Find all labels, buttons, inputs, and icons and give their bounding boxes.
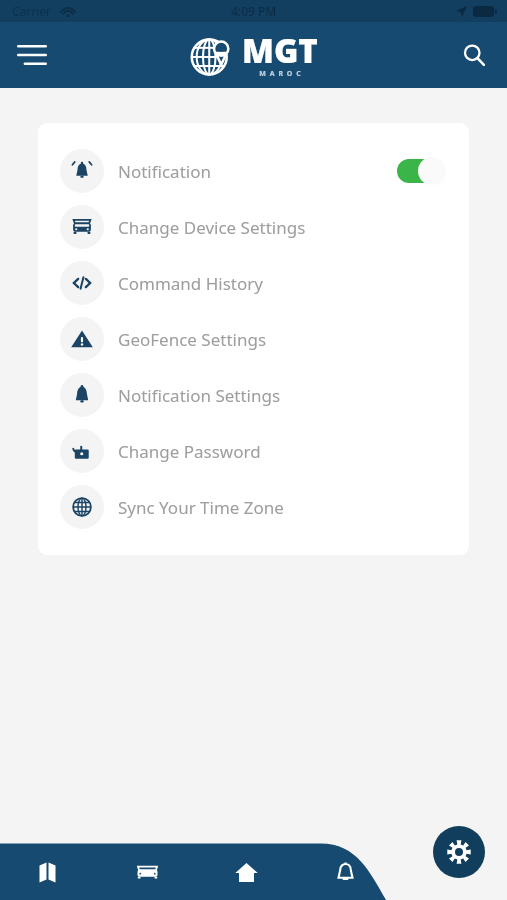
staticText: M A R O C	[259, 69, 302, 79]
button[interactable]: Search	[451, 32, 497, 78]
button[interactable]: Settings	[433, 826, 485, 878]
button[interactable]	[395, 156, 447, 186]
button[interactable]: Sync Your Time Zone	[38, 479, 469, 535]
staticText: Notification	[118, 160, 211, 183]
button[interactable]: Change Password	[38, 423, 469, 479]
button[interactable]: Notifications	[296, 844, 395, 900]
button[interactable]: Notification Settings	[38, 367, 469, 423]
button[interactable]: Map	[0, 844, 98, 900]
button[interactable]: Notification	[38, 143, 469, 199]
staticText: Notification Settings	[118, 384, 281, 407]
button[interactable]: Vehicles	[98, 844, 197, 900]
staticText: Sync Your Time Zone	[118, 496, 284, 519]
staticText: Change Device Settings	[118, 216, 306, 239]
staticText: Command History	[118, 272, 263, 295]
staticText: Carrier	[12, 3, 52, 19]
staticText: Change Password	[118, 440, 261, 463]
staticText: GeoFence Settings	[118, 328, 267, 351]
button[interactable]: Home	[197, 844, 296, 900]
staticText: 4:09 PM	[231, 3, 277, 19]
button[interactable]: Change Device Settings	[38, 199, 469, 255]
staticText: MGT	[242, 28, 318, 73]
button[interactable]: Command History	[38, 255, 469, 311]
button[interactable]: Menu	[8, 31, 56, 79]
button[interactable]: GeoFence Settings	[38, 311, 469, 367]
